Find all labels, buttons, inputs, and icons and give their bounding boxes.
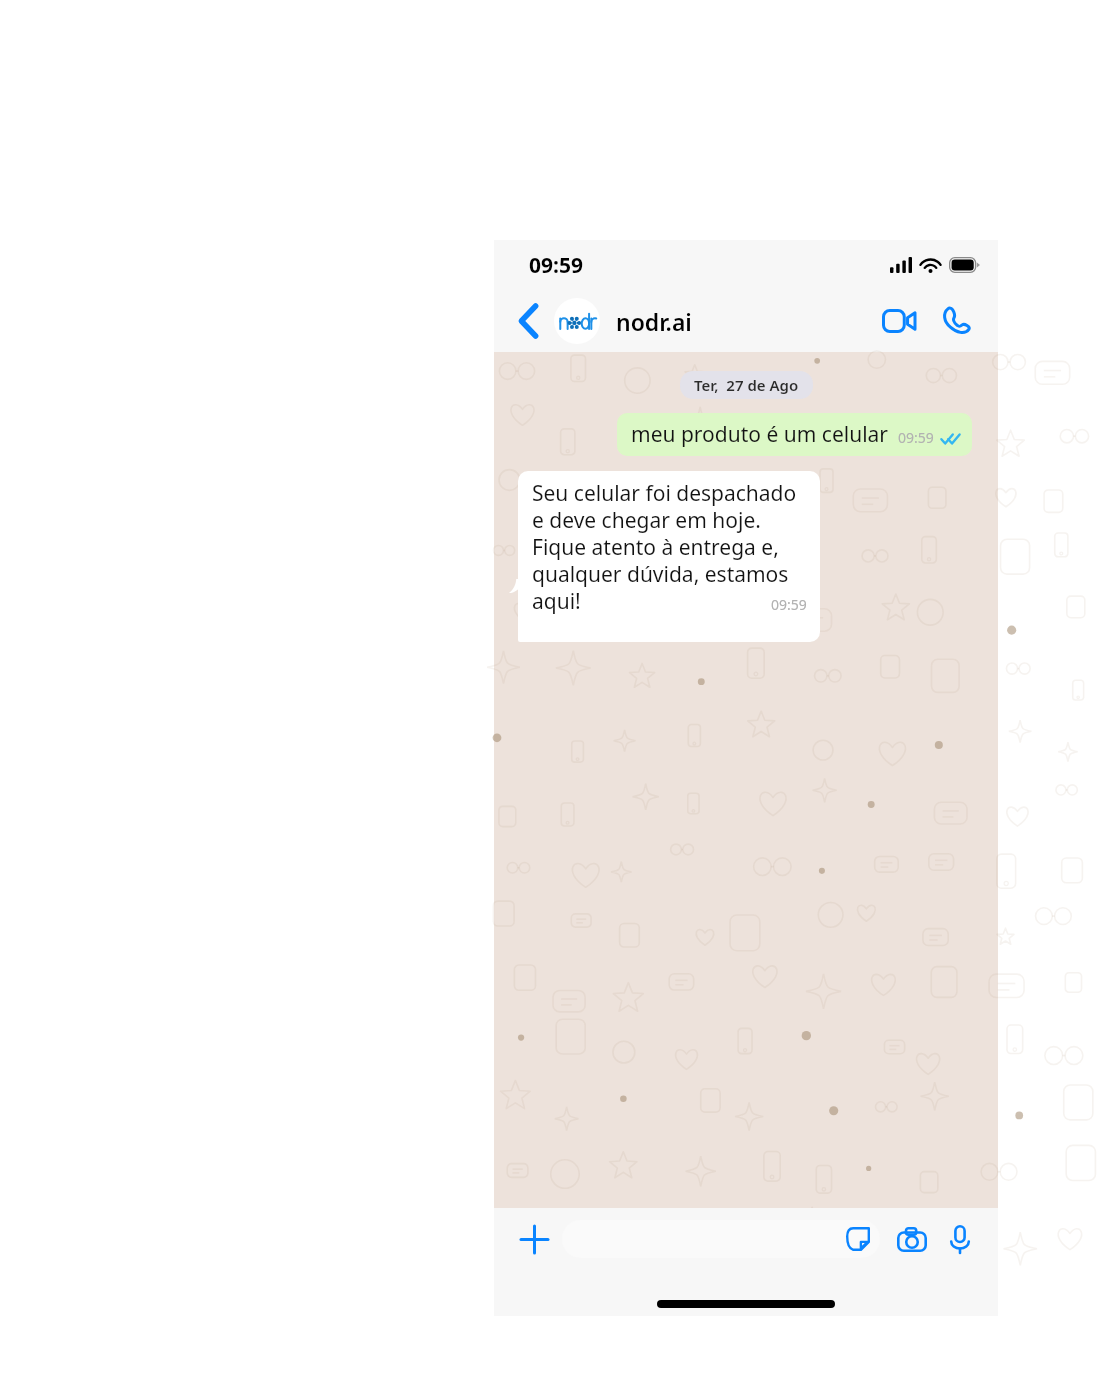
staticText: nodr.ai: [616, 306, 692, 337]
button[interactable]: Video call: [874, 297, 922, 345]
button[interactable]: Ter, 27 de Ago: [680, 371, 813, 399]
staticText: 09:59: [771, 595, 807, 614]
button[interactable]: [562, 1220, 880, 1258]
staticText: 09:59: [529, 251, 583, 280]
button[interactable]: meu produto é um celular: [617, 413, 972, 456]
button[interactable]: Voice call: [932, 297, 980, 345]
staticText: 09:59: [898, 428, 934, 447]
button[interactable]: Attach: [512, 1217, 556, 1261]
button[interactable]: Seu celular foi despachado e deve chegar…: [518, 471, 820, 642]
staticText: meu produto é um celular: [631, 420, 888, 449]
staticText: Seu celular foi despachado e deve chegar…: [532, 479, 807, 615]
button[interactable]: Camera: [892, 1219, 932, 1259]
button[interactable]: nodr.ai: [554, 290, 874, 352]
button[interactable]: Voice message: [940, 1219, 980, 1259]
staticText: Ter, 27 de Ago: [694, 375, 799, 395]
button[interactable]: Back: [506, 299, 550, 343]
